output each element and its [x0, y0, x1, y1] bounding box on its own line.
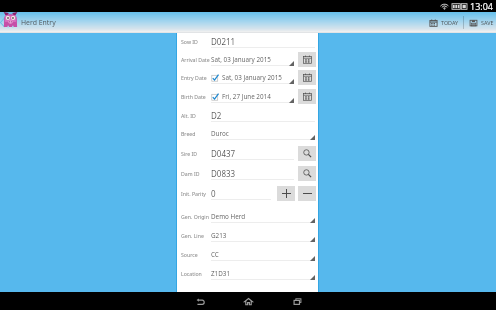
staticText: Sat, 03 January 2015: [222, 73, 282, 82]
staticText: 0: [211, 188, 216, 199]
button[interactable]: Entry Date: [177, 69, 318, 85]
staticText: Location: [181, 270, 211, 277]
button[interactable]: Search: [298, 166, 316, 181]
button[interactable]: Arrival Date: [177, 51, 318, 67]
staticText: Entry Date: [181, 74, 211, 81]
staticText: Breed: [181, 130, 211, 137]
button[interactable]: Pick date: [298, 52, 316, 67]
staticText: Birth Date: [181, 93, 211, 100]
staticText: CC: [211, 250, 219, 259]
button[interactable]: Decrement: [298, 186, 316, 201]
staticText: Gen. Line: [181, 232, 211, 239]
button[interactable]: Herd Entry: [0, 12, 56, 33]
button[interactable]: Location: [177, 265, 318, 281]
staticText: Herd Entry: [21, 18, 56, 27]
staticText: Sow ID: [181, 38, 211, 45]
staticText: D0437: [211, 148, 236, 159]
staticText: D2: [211, 110, 222, 121]
staticText: Fri, 27 June 2014: [222, 92, 271, 101]
staticText: 13:04: [470, 0, 494, 12]
button[interactable]: TODAY: [424, 12, 463, 33]
staticText: D0211: [211, 36, 236, 47]
staticText: G213: [211, 231, 227, 240]
button[interactable]: Search: [298, 146, 316, 161]
staticText: SAVE: [481, 19, 494, 26]
button[interactable]: Home: [240, 292, 257, 310]
button[interactable]: Back: [192, 292, 209, 310]
staticText: Source: [181, 251, 211, 258]
button[interactable]: Pick date: [298, 70, 316, 85]
button[interactable]: Enable Entry Date: [211, 74, 219, 82]
button[interactable]: Birth Date: [177, 88, 318, 104]
button[interactable]: Dam ID: [177, 165, 318, 181]
staticText: D0833: [211, 168, 236, 179]
button[interactable]: Pick date: [298, 89, 316, 104]
button[interactable]: Recent apps: [289, 292, 306, 310]
staticText: Dam ID: [181, 170, 211, 177]
button[interactable]: Breed: [177, 125, 318, 141]
button[interactable]: Enable Birth Date: [211, 93, 219, 101]
button[interactable]: Increment: [277, 186, 295, 201]
staticText: Arrival Date: [181, 56, 211, 63]
staticText: Demo Herd: [211, 212, 246, 221]
staticText: Sire ID: [181, 150, 211, 157]
staticText: Duroc: [211, 129, 229, 138]
button[interactable]: Gen. Origin: [177, 208, 318, 224]
staticText: Gen. Origin: [181, 213, 211, 220]
button[interactable]: SAVE: [464, 12, 496, 33]
button[interactable]: Gen. Line: [177, 227, 318, 243]
button[interactable]: Alt. ID: [177, 107, 318, 123]
button[interactable]: Init. Parity: [177, 185, 318, 201]
staticText: Sat, 03 January 2015: [211, 55, 271, 64]
staticText: Z1D31: [211, 269, 231, 278]
button[interactable]: Sow ID: [177, 33, 318, 49]
staticText: Alt. ID: [181, 112, 211, 119]
button[interactable]: Sire ID: [177, 145, 318, 161]
button[interactable]: Source: [177, 246, 318, 262]
staticText: Init. Parity: [181, 190, 211, 197]
staticText: TODAY: [441, 19, 459, 26]
